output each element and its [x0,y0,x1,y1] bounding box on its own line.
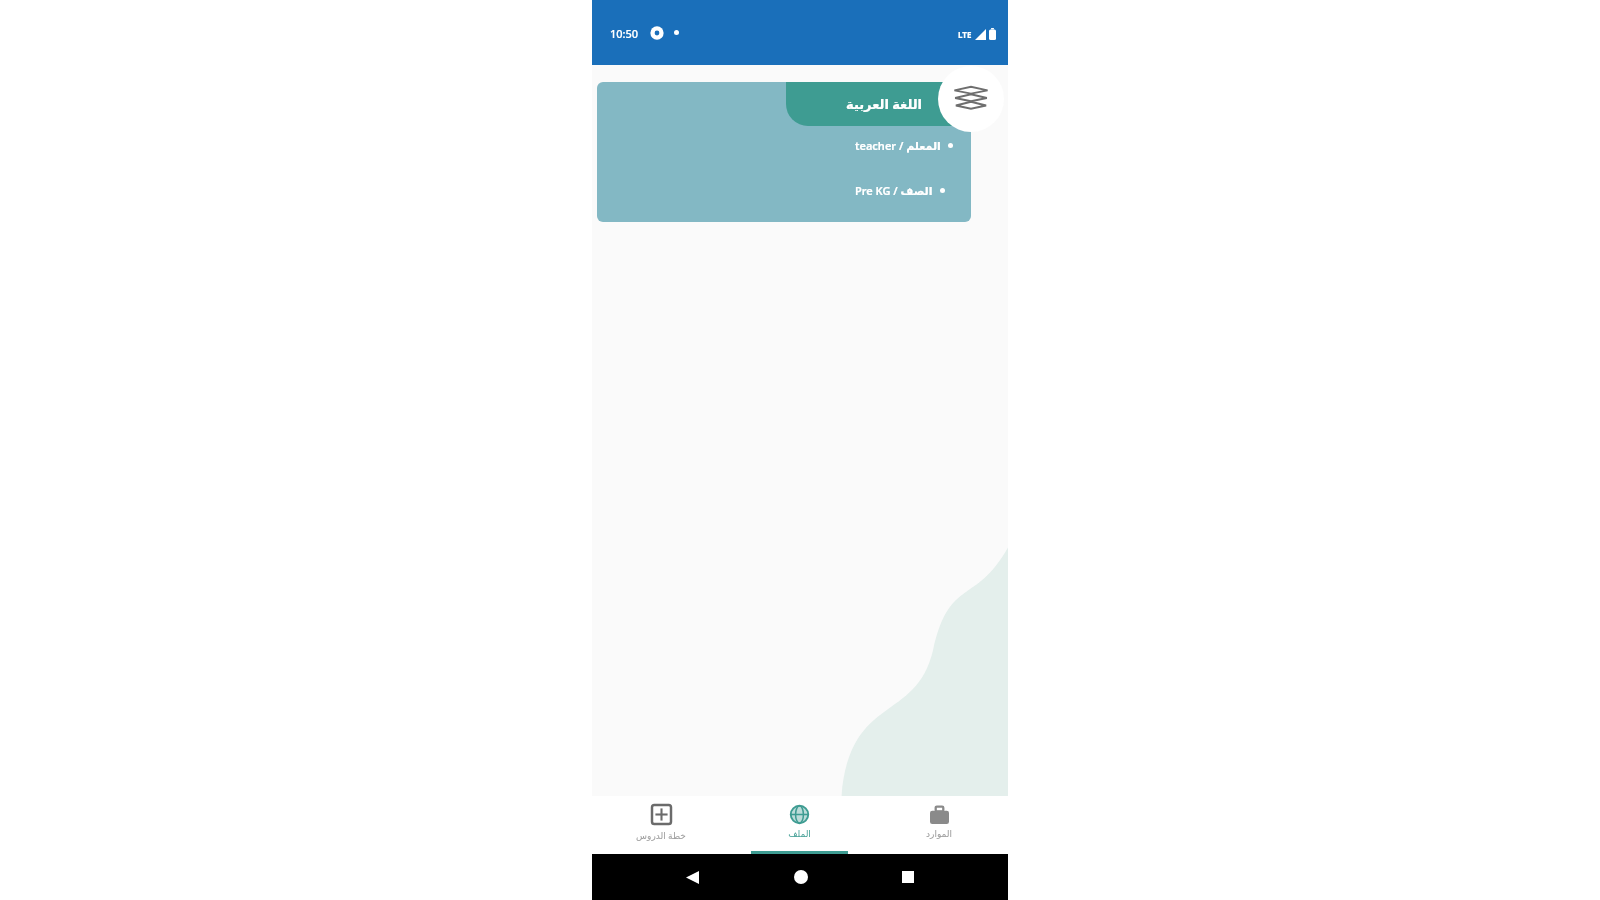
button[interactable]: الملف [730,796,869,854]
staticText: teacher / المعلم [855,138,941,153]
staticText: 10:50 [610,26,639,41]
other: Home [794,870,808,884]
staticText: خطة الدروس [636,829,686,841]
button[interactable]: Subject books [938,66,1004,132]
staticText: اللغة العربية [846,95,923,113]
button[interactable]: خطة الدروس [592,796,730,854]
other: Back [686,871,699,884]
staticText: LTE [958,29,972,40]
staticText: الملف [788,829,811,839]
button[interactable]: الموارد [869,796,1008,854]
staticText: Pre KG / الصف [855,183,933,198]
button[interactable]: اللغة العربية [597,82,971,222]
staticText: الموارد [926,829,952,839]
